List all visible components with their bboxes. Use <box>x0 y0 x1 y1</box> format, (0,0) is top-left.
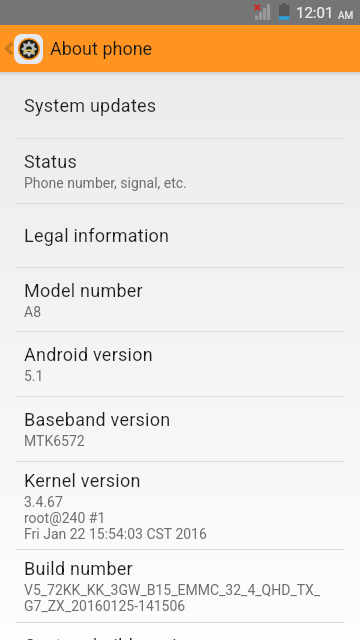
staticText: 12:01 <box>296 4 334 22</box>
staticText: Custom build version <box>24 635 198 640</box>
staticText: V5_72KK_KK_3GW_B15_EMMC_32_4_QHD_TX_ <box>24 582 321 598</box>
staticText: System updates <box>24 95 157 116</box>
staticText: Status <box>24 151 77 172</box>
staticText: MTK6572 <box>24 433 85 449</box>
button[interactable]: Build number <box>0 550 360 622</box>
staticText: Build number <box>24 558 133 579</box>
button[interactable]: Android version <box>0 332 360 396</box>
staticText: Legal information <box>24 225 170 246</box>
staticText: A8 <box>24 304 42 320</box>
staticText: AM <box>338 10 354 22</box>
staticText: Android version <box>24 344 153 365</box>
staticText: About phone <box>50 38 153 59</box>
button[interactable]: Kernel version <box>0 462 360 549</box>
button[interactable]: Legal information <box>0 204 360 267</box>
button[interactable]: Model number <box>0 268 360 331</box>
button[interactable]: Baseband version <box>0 397 360 461</box>
staticText: Kernel version <box>24 470 141 491</box>
staticText: G7_ZX_20160125-141506 <box>24 598 186 614</box>
button[interactable]: Navigate up: About phone <box>0 25 360 72</box>
staticText: root@240 #1 <box>24 510 106 526</box>
staticText: Fri Jan 22 15:54:03 CST 2016 <box>24 526 207 542</box>
button[interactable]: Custom build version <box>0 623 360 640</box>
staticText: Model number <box>24 280 143 301</box>
button[interactable]: Status <box>0 139 360 203</box>
staticText: 5.1 <box>24 368 44 384</box>
staticText: 3.4.67 <box>24 494 63 510</box>
staticText: Baseband version <box>24 409 171 430</box>
button[interactable]: System updates <box>0 72 360 138</box>
staticText: Phone number, signal, etc. <box>24 175 187 191</box>
